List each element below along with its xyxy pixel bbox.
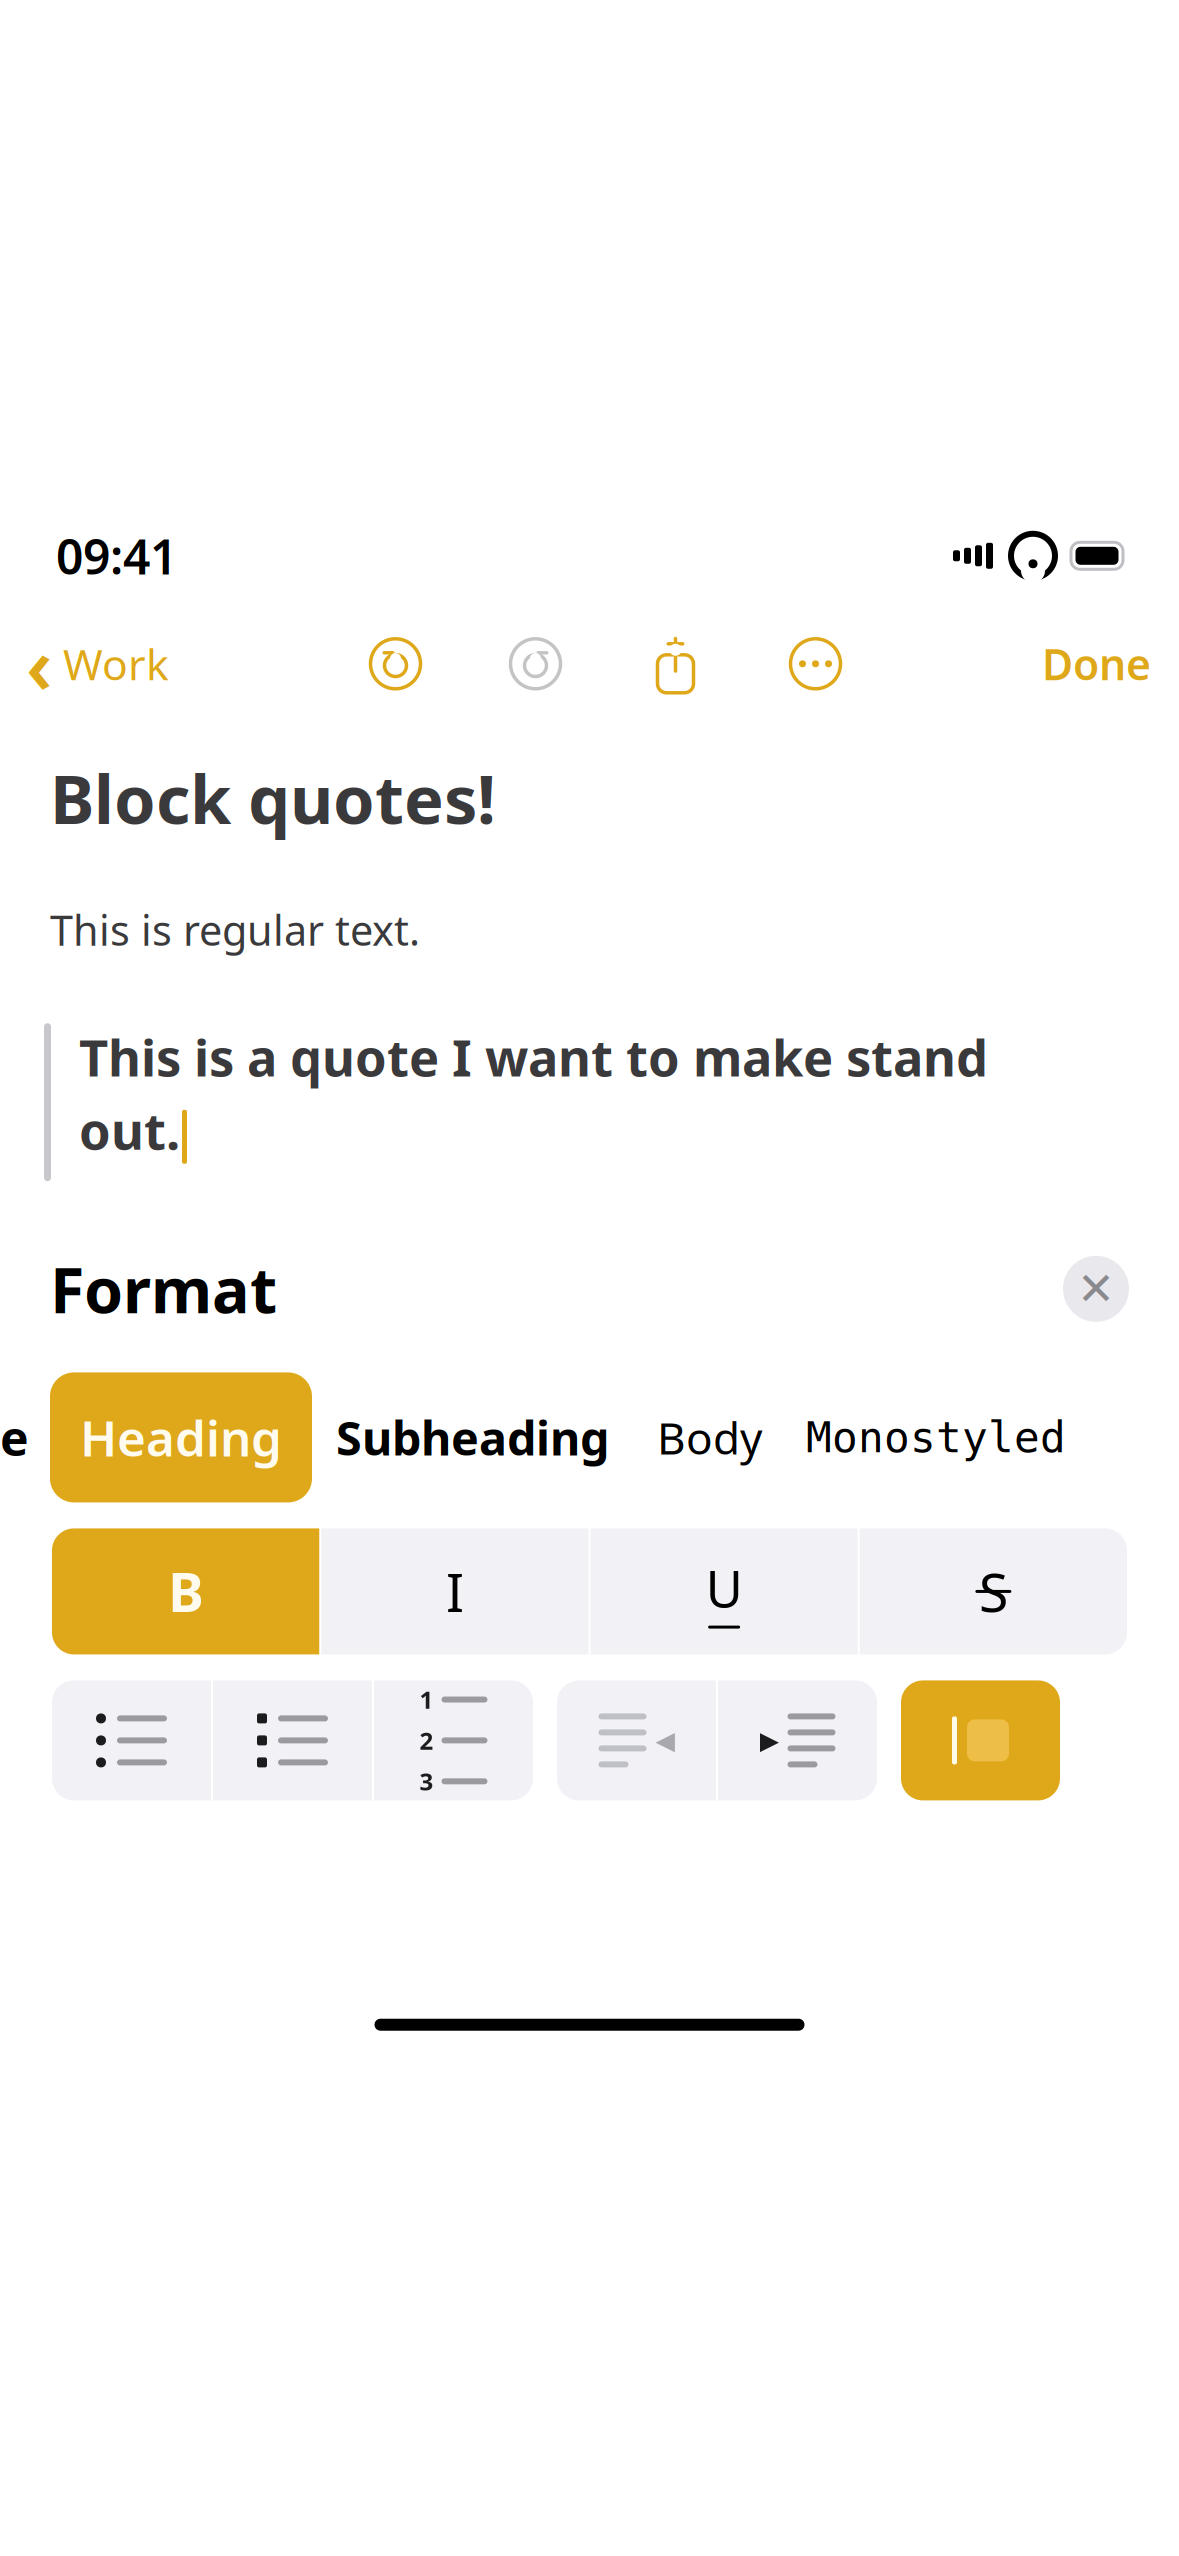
staticText: B — [168, 1556, 203, 1627]
button[interactable]: Close Format — [1063, 1256, 1129, 1322]
button[interactable]: S — [860, 1528, 1127, 1654]
button[interactable]: Heading — [50, 1372, 312, 1502]
staticText: Done — [1042, 635, 1151, 692]
staticText: 3 — [419, 1765, 433, 1797]
button[interactable]: Dashed list — [213, 1680, 372, 1800]
staticText: e — [0, 1406, 29, 1469]
staticText: 1 — [419, 1684, 433, 1715]
staticText: U — [706, 1554, 743, 1622]
button[interactable]: More options — [787, 636, 843, 692]
staticText: I — [446, 1556, 464, 1627]
staticText: Monostyled — [806, 1413, 1066, 1462]
staticText: Body — [657, 1408, 762, 1467]
staticText: 2 — [419, 1724, 433, 1756]
button[interactable]: Done — [1042, 627, 1179, 700]
button[interactable]: Increase indent — [718, 1680, 877, 1800]
button[interactable]: Redo — [507, 636, 563, 692]
button[interactable]: Share — [647, 633, 703, 695]
staticText: Block quotes! — [50, 754, 496, 842]
button[interactable]: B — [52, 1528, 319, 1654]
button[interactable]: Block quote — [901, 1680, 1060, 1800]
button[interactable]: Decrease indent — [557, 1680, 716, 1800]
staticText: This is a quote I want to make stand — [79, 1023, 988, 1090]
button[interactable]: Numbered list — [374, 1680, 533, 1800]
button[interactable]: Monostyled — [786, 1372, 1086, 1502]
staticText: This is regular text. — [50, 902, 420, 957]
staticText: out. — [79, 1096, 180, 1164]
staticText: Heading — [80, 1405, 282, 1470]
staticText: ◀ — [655, 1726, 674, 1755]
staticText: 09:41 — [56, 524, 177, 588]
staticText: Work — [63, 635, 169, 692]
button[interactable]: Bulleted list — [52, 1680, 211, 1800]
button[interactable]: Subheading — [312, 1372, 633, 1502]
staticText: S — [979, 1556, 1008, 1627]
button[interactable]: Body — [633, 1372, 786, 1502]
button[interactable]: ‹ — [0, 604, 169, 723]
button[interactable]: U — [590, 1528, 858, 1654]
button[interactable]: I — [321, 1528, 588, 1654]
button[interactable]: Undo — [367, 636, 423, 692]
staticText: Subheading — [336, 1406, 609, 1468]
staticText: Format — [50, 1247, 277, 1330]
staticText: ▶ — [759, 1726, 778, 1755]
staticText: ✕ — [1077, 1263, 1115, 1315]
staticText: ‹ — [26, 612, 53, 715]
